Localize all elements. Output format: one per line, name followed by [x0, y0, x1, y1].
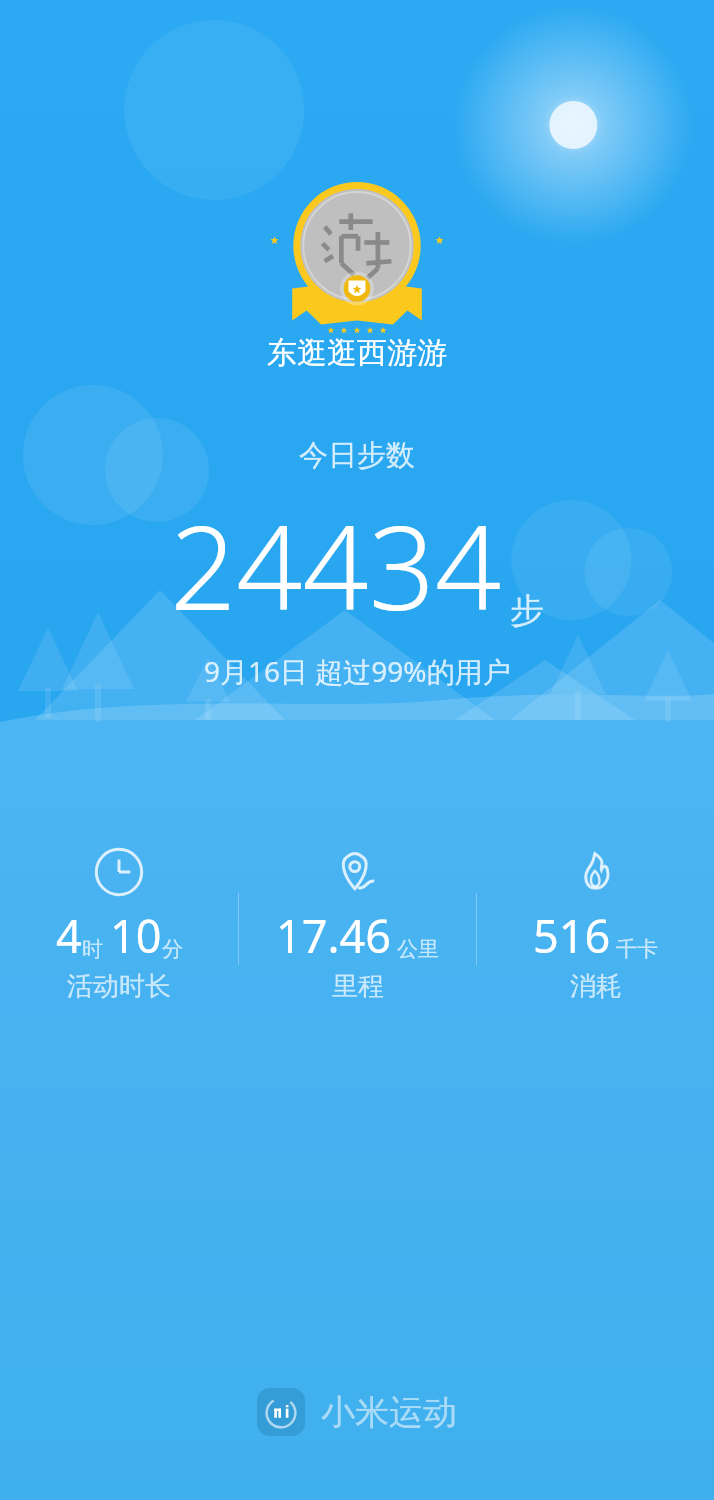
staticText: 东逛逛西游游	[267, 334, 447, 372]
staticText: 10	[110, 905, 162, 966]
staticText: 公里	[397, 936, 439, 962]
staticText: 步	[510, 589, 544, 632]
button[interactable]: Mi Fit logo	[257, 1388, 457, 1436]
button[interactable]: Active duration	[0, 845, 238, 1003]
staticText: 17.46	[276, 905, 392, 966]
staticText: 9月16日 超过99%的用户	[204, 652, 511, 690]
button[interactable]: Distance	[239, 845, 476, 1003]
staticText: 4	[56, 905, 82, 966]
staticText: 24434	[170, 486, 502, 644]
staticText: 516	[533, 905, 611, 966]
staticText: 小米运动	[321, 1391, 457, 1434]
staticText: 今日步数	[299, 437, 415, 474]
staticText: 分	[162, 936, 183, 962]
staticText: 千卡	[616, 936, 658, 962]
staticText: 活动时长	[67, 970, 171, 1003]
button[interactable]: Calories	[477, 845, 714, 1003]
other: Mi Fit logo	[257, 1388, 305, 1436]
staticText: 时	[82, 936, 103, 962]
staticText: 消耗	[570, 970, 622, 1003]
staticText: 里程	[332, 970, 384, 1003]
button[interactable]: Achievement badge	[267, 181, 447, 331]
